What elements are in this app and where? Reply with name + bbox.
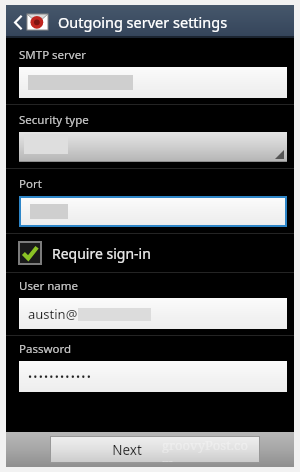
staticText: Password — [19, 341, 72, 357]
button[interactable]: Navigate up — [11, 11, 51, 33]
staticText: Require sign-in — [52, 244, 151, 263]
button[interactable]: Next — [50, 436, 260, 463]
staticText: groovyPost.com — [162, 436, 260, 463]
staticText: Port — [19, 176, 42, 192]
staticText: Next — [112, 441, 142, 459]
staticText: austin@ — [28, 305, 78, 323]
staticText: •••••••••••• — [28, 369, 93, 384]
button[interactable]: Port — [6, 169, 294, 233]
button[interactable]: Password — [6, 336, 294, 398]
button[interactable]: SMTP server — [6, 38, 294, 104]
button[interactable]: Security type — [6, 105, 294, 168]
staticText: SMTP server — [19, 47, 86, 63]
staticText: Security type — [19, 112, 89, 128]
staticText: User name — [19, 278, 78, 294]
staticText: Outgoing server settings — [58, 12, 228, 32]
button[interactable]: Require sign-in — [6, 234, 294, 272]
button[interactable]: User name — [6, 273, 294, 335]
button[interactable] — [19, 132, 287, 162]
